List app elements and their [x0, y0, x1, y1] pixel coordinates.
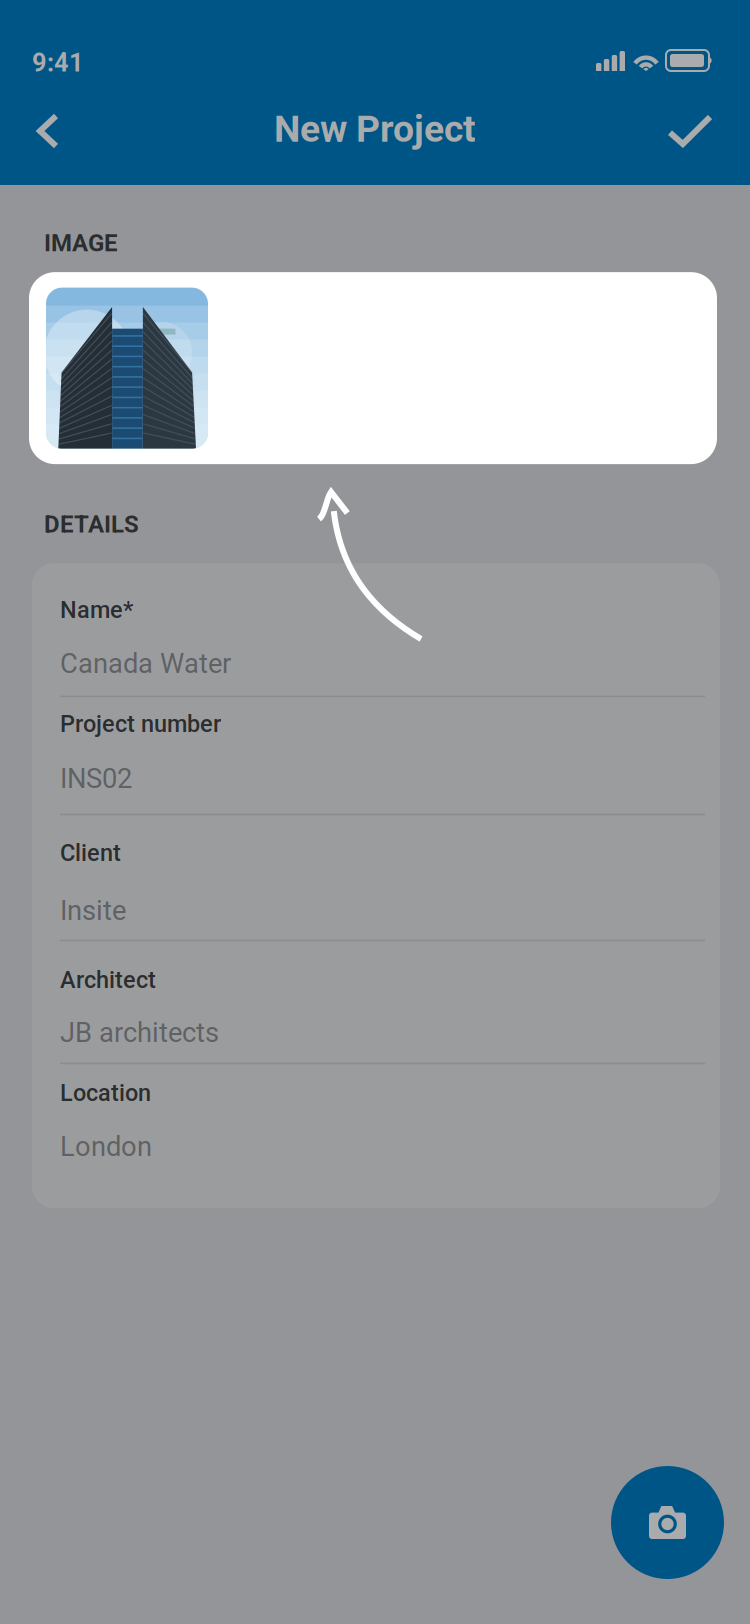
staticText: INS02: [60, 763, 132, 795]
staticText: Name*: [60, 596, 133, 624]
staticText: New Project: [274, 107, 476, 151]
button[interactable]: Back: [15, 96, 81, 166]
staticText: 9:41: [32, 48, 84, 78]
button[interactable]: Save: [646, 97, 732, 164]
staticText: DETAILS: [44, 510, 139, 538]
staticText: Insite: [60, 895, 126, 927]
staticText: London: [60, 1131, 152, 1163]
staticText: Client: [60, 839, 121, 867]
button[interactable]: Take photo: [611, 1466, 724, 1579]
staticText: Location: [60, 1079, 151, 1107]
staticText: IMAGE: [44, 229, 118, 257]
staticText: Project number: [60, 710, 221, 738]
staticText: Canada Water: [60, 648, 231, 680]
button[interactable]: Project image: [29, 272, 717, 464]
staticText: JB architects: [60, 1017, 219, 1049]
staticText: Architect: [60, 966, 156, 994]
